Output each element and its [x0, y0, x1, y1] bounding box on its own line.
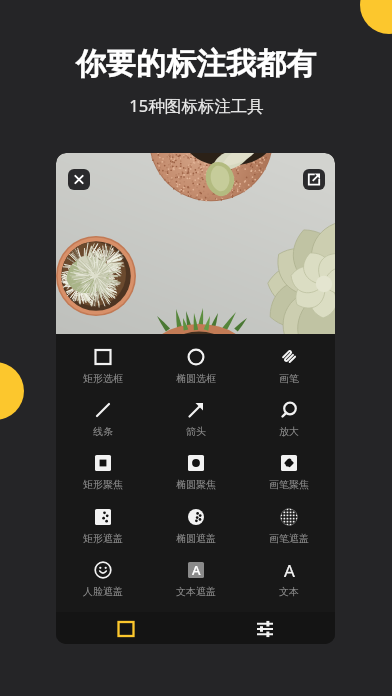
- staticText: 放大: [279, 425, 299, 438]
- staticText: 矩形聚焦: [83, 478, 123, 491]
- button[interactable]: 线条: [56, 398, 149, 438]
- staticText: 你要的标注我都有: [76, 45, 316, 83]
- staticText: 15种图标标注工具: [129, 94, 264, 117]
- button[interactable]: 画笔聚焦: [242, 451, 335, 491]
- staticText: 画笔聚焦: [269, 478, 309, 491]
- staticText: 矩形选框: [83, 372, 123, 385]
- button[interactable]: A: [242, 558, 335, 598]
- staticText: 文本: [279, 585, 299, 598]
- staticText: 椭圆聚焦: [176, 478, 216, 491]
- staticText: 矩形遮盖: [83, 532, 123, 545]
- staticText: 文本遮盖: [176, 585, 216, 598]
- button[interactable]: Close: [68, 169, 90, 190]
- button[interactable]: 椭圆选框: [149, 345, 242, 385]
- button[interactable]: 矩形遮盖: [56, 505, 149, 545]
- button[interactable]: 矩形聚焦: [56, 451, 149, 491]
- button[interactable]: 椭圆遮盖: [149, 505, 242, 545]
- staticText: 椭圆遮盖: [176, 532, 216, 545]
- button[interactable]: 放大: [242, 398, 335, 438]
- button[interactable]: A: [149, 558, 242, 598]
- staticText: 人脸遮盖: [83, 585, 123, 598]
- staticText: A: [192, 561, 201, 579]
- staticText: A: [284, 559, 295, 582]
- staticText: 画笔: [279, 372, 299, 385]
- button[interactable]: Settings: [195, 612, 335, 644]
- button[interactable]: 人脸遮盖: [56, 558, 149, 598]
- staticText: 画笔遮盖: [269, 532, 309, 545]
- button[interactable]: 画笔遮盖: [242, 505, 335, 545]
- button[interactable]: Shape tool: [56, 612, 195, 644]
- staticText: 椭圆选框: [176, 372, 216, 385]
- button[interactable]: Share: [303, 169, 325, 190]
- button[interactable]: 画笔: [242, 345, 335, 385]
- staticText: 线条: [93, 425, 113, 438]
- button[interactable]: 箭头: [149, 398, 242, 438]
- button[interactable]: 椭圆聚焦: [149, 451, 242, 491]
- button[interactable]: 矩形选框: [56, 345, 149, 385]
- staticText: 箭头: [186, 425, 206, 438]
